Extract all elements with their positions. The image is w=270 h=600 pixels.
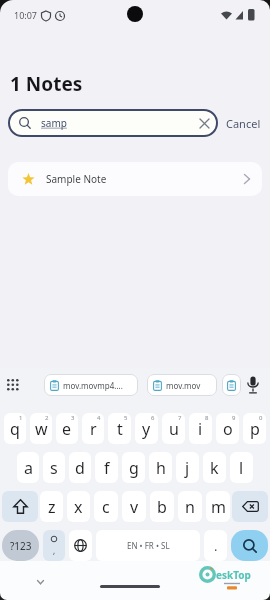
button[interactable]: q — [4, 413, 26, 444]
staticText: mov.movmp4.... — [63, 380, 123, 391]
button[interactable]: r — [82, 413, 104, 444]
staticText: 2 — [45, 414, 49, 422]
staticText: y — [142, 418, 151, 440]
staticText: v — [130, 496, 139, 518]
staticText: q — [10, 418, 20, 440]
button[interactable]: h — [149, 452, 172, 483]
button[interactable] — [2, 491, 38, 522]
staticText: b — [157, 496, 167, 518]
button[interactable] — [247, 376, 259, 394]
staticText: g — [129, 457, 139, 479]
staticText: m — [211, 496, 226, 518]
staticText: p — [250, 418, 260, 440]
staticText: mov.mov — [166, 380, 201, 391]
staticText: 0 — [259, 414, 263, 422]
button[interactable]: EN • FR • SL — [96, 530, 200, 561]
staticText: , — [53, 545, 56, 556]
button[interactable]: l — [230, 452, 253, 483]
button[interactable]: ?123 — [2, 530, 39, 561]
button[interactable]: u — [162, 413, 185, 444]
button[interactable]: e — [56, 413, 78, 444]
staticText: EN • FR • SL — [127, 540, 170, 551]
button[interactable] — [69, 530, 92, 561]
staticText: s — [50, 457, 58, 479]
button[interactable]: , — [43, 530, 65, 561]
staticText: . — [214, 537, 218, 555]
staticText: k — [210, 457, 219, 479]
button[interactable]: v — [122, 491, 146, 522]
button[interactable]: x — [67, 491, 90, 522]
button[interactable]: z — [40, 491, 63, 522]
button[interactable]: . — [204, 530, 227, 561]
staticText: z — [48, 496, 56, 518]
staticText: t — [117, 418, 123, 440]
staticText: ?123 — [10, 539, 32, 553]
staticText: 10:07 — [14, 9, 38, 21]
button[interactable]: Sample Note — [8, 162, 262, 196]
staticText: o — [223, 418, 233, 440]
staticText: 3 — [71, 414, 75, 422]
staticText: f — [104, 457, 110, 479]
button[interactable]: mov.movmp4.... — [50, 374, 132, 396]
staticText: eskTop — [216, 568, 251, 582]
button[interactable]: s — [43, 452, 65, 483]
staticText: 1 — [19, 414, 23, 422]
button[interactable]: samp — [8, 109, 218, 137]
staticText: 1 Notes — [10, 71, 83, 97]
staticText: c — [102, 496, 110, 518]
button[interactable]: Cancel — [226, 116, 261, 131]
staticText: 8 — [205, 414, 209, 422]
staticText: samp — [41, 116, 67, 130]
staticText: j — [185, 457, 190, 479]
button[interactable]: w — [30, 413, 52, 444]
button[interactable]: y — [135, 413, 158, 444]
staticText: l — [239, 457, 244, 479]
staticText: 6 — [151, 414, 155, 422]
button[interactable]: n — [178, 491, 202, 522]
staticText: Sample Note — [46, 172, 107, 186]
button[interactable]: mov.mov — [153, 374, 211, 396]
button[interactable]: b — [150, 491, 174, 522]
staticText: w — [35, 418, 48, 440]
staticText: h — [156, 457, 166, 479]
staticText: e — [62, 418, 72, 440]
button[interactable] — [232, 491, 268, 522]
button[interactable] — [6, 378, 20, 392]
staticText: a — [24, 457, 33, 479]
button[interactable] — [231, 530, 268, 561]
button[interactable]: a — [17, 452, 39, 483]
staticText: n — [185, 496, 195, 518]
button[interactable]: d — [69, 452, 91, 483]
staticText: x — [74, 496, 83, 518]
button[interactable]: p — [243, 413, 266, 444]
button[interactable]: m — [206, 491, 230, 522]
staticText: 4 — [97, 414, 101, 422]
staticText: u — [169, 418, 179, 440]
staticText: r — [90, 418, 97, 440]
button[interactable]: f — [95, 452, 118, 483]
button[interactable]: t — [108, 413, 131, 444]
button[interactable]: o — [216, 413, 239, 444]
staticText: d — [75, 457, 85, 479]
button[interactable]: i — [189, 413, 212, 444]
staticText: 9 — [232, 414, 236, 422]
button[interactable]: c — [94, 491, 118, 522]
button[interactable]: j — [176, 452, 199, 483]
staticText: i — [198, 418, 203, 440]
button[interactable]: k — [203, 452, 226, 483]
staticText: 7 — [178, 414, 182, 422]
button[interactable]: g — [122, 452, 145, 483]
staticText: 5 — [124, 414, 128, 422]
